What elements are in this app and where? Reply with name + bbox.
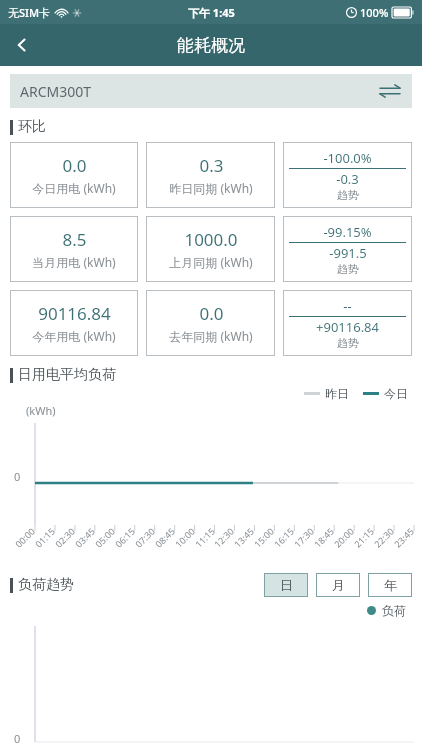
button[interactable]: -99.15% [283, 216, 412, 282]
staticText: 月 [332, 577, 345, 593]
staticText: -0.3 [336, 170, 359, 188]
staticText: 22:30 [371, 524, 397, 550]
staticText: (kWh) [26, 403, 56, 418]
staticText: 15:00 [251, 524, 277, 550]
staticText: 11:15 [192, 524, 218, 550]
staticText: 18:45 [311, 524, 337, 550]
staticText: 05:00 [92, 524, 118, 550]
staticText: 90116.84 [38, 302, 111, 325]
staticText: -100.0% [323, 149, 372, 167]
staticText: 昨日 [325, 386, 349, 401]
staticText: 无SIM卡 [8, 5, 51, 20]
staticText: 上月同期 (kWh) [169, 254, 253, 270]
staticText: 0 [14, 469, 21, 484]
staticText: -99.15% [323, 223, 372, 241]
staticText: 12:30 [211, 524, 237, 550]
staticText: 今年用电 (kWh) [32, 328, 116, 344]
staticText: -- [343, 297, 352, 315]
button[interactable]: 8.5 [10, 216, 138, 282]
staticText: 10:00 [172, 524, 198, 550]
staticText: -991.5 [329, 244, 367, 262]
staticText: 08:45 [152, 524, 178, 550]
staticText: 00:00 [12, 524, 38, 550]
staticText: 负荷 [382, 603, 406, 618]
staticText: 昨日同期 (kWh) [169, 180, 253, 196]
staticText: 日用电平均负荷 [18, 366, 116, 384]
staticText: 02:30 [52, 524, 78, 550]
button[interactable]: 0.0 [146, 290, 275, 356]
staticText: 20:00 [331, 524, 357, 550]
staticText: 趋势 [337, 188, 359, 202]
staticText: 21:15 [351, 524, 377, 550]
staticText: 16:15 [271, 524, 297, 550]
staticText: 下午 1:45 [188, 5, 235, 20]
staticText: 0.0 [199, 302, 224, 325]
staticText: 年 [384, 577, 397, 593]
button[interactable]: 90116.84 [10, 290, 138, 356]
button[interactable]: 年 [368, 573, 412, 597]
staticText: 1000.0 [184, 228, 238, 251]
staticText: 8.5 [62, 228, 87, 251]
staticText: 去年同期 (kWh) [169, 328, 253, 344]
staticText: 17:30 [291, 524, 317, 550]
other: Switch device [378, 79, 402, 103]
staticText: 0.0 [62, 154, 87, 177]
button[interactable]: 0.0 [10, 142, 138, 208]
staticText: 01:15 [32, 524, 58, 550]
button[interactable]: -100.0% [283, 142, 412, 208]
staticText: 趋势 [337, 336, 359, 350]
button[interactable]: 月 [316, 573, 360, 597]
staticText: 06:15 [112, 524, 138, 550]
staticText: 0.3 [199, 154, 224, 177]
button[interactable]: Back [0, 24, 44, 66]
staticText: +90116.84 [316, 318, 379, 336]
staticText: 今日用电 (kWh) [32, 180, 116, 196]
staticText: ARCM300T [20, 82, 92, 101]
button[interactable]: 1000.0 [146, 216, 275, 282]
staticText: 环比 [18, 118, 46, 136]
staticText: 能耗概况 [177, 35, 245, 56]
staticText: 趋势 [337, 262, 359, 276]
staticText: 03:45 [72, 524, 98, 550]
button[interactable]: 0.3 [146, 142, 275, 208]
staticText: 13:45 [231, 524, 257, 550]
staticText: 23:45 [391, 524, 417, 550]
staticText: 今日 [384, 386, 408, 401]
staticText: 当月用电 (kWh) [32, 254, 116, 270]
button[interactable]: ARCM300T [10, 74, 412, 108]
button[interactable]: -- [283, 290, 412, 356]
staticText: 负荷趋势 [18, 576, 74, 594]
button[interactable]: 日 [264, 573, 308, 597]
staticText: 07:30 [132, 524, 158, 550]
staticText: 100% [360, 5, 389, 20]
staticText: 日 [280, 577, 293, 593]
staticText: 0 [14, 731, 21, 746]
